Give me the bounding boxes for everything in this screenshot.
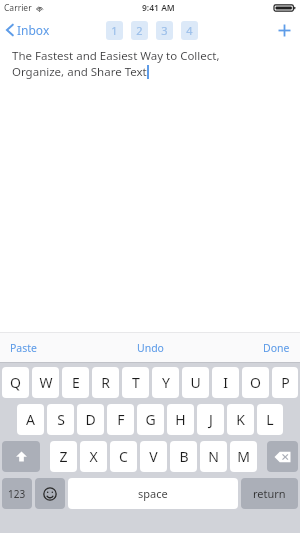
button[interactable]: J bbox=[197, 404, 224, 435]
button[interactable]: 123 bbox=[2, 478, 32, 509]
button[interactable]: 3 bbox=[156, 21, 173, 40]
staticText: M bbox=[237, 447, 250, 466]
button[interactable]: T bbox=[122, 367, 149, 398]
button[interactable]: 2 bbox=[131, 21, 148, 40]
staticText: J bbox=[209, 410, 213, 429]
staticText: Y bbox=[162, 373, 170, 392]
staticText: L bbox=[266, 410, 274, 429]
staticText: X bbox=[89, 447, 98, 466]
staticText: T bbox=[132, 373, 140, 392]
button[interactable]: V bbox=[140, 441, 167, 472]
button[interactable]: E bbox=[62, 367, 89, 398]
button[interactable]: Q bbox=[2, 367, 29, 398]
staticText: Paste bbox=[10, 341, 37, 355]
button[interactable]: Shift bbox=[2, 441, 40, 472]
staticText: Q bbox=[10, 373, 21, 392]
button[interactable]: B bbox=[170, 441, 197, 472]
button[interactable]: W bbox=[32, 367, 59, 398]
staticText: F bbox=[117, 410, 125, 429]
staticText: D bbox=[85, 410, 96, 429]
button[interactable]: 1 bbox=[106, 21, 123, 40]
staticText: V bbox=[149, 447, 158, 466]
staticText: R bbox=[101, 373, 110, 392]
staticText: Undo bbox=[137, 341, 164, 355]
staticText: E bbox=[72, 373, 80, 392]
staticText: W bbox=[39, 373, 53, 392]
staticText: 1 bbox=[111, 23, 118, 38]
button[interactable]: Inbox bbox=[0, 18, 58, 42]
button[interactable]: L bbox=[257, 404, 283, 435]
staticText: I bbox=[223, 373, 228, 392]
staticText: H bbox=[175, 410, 186, 429]
staticText: P bbox=[281, 373, 290, 392]
button[interactable]: X bbox=[80, 441, 107, 472]
button[interactable]: Add bbox=[269, 19, 300, 42]
button[interactable]: K bbox=[227, 404, 254, 435]
button[interactable]: C bbox=[110, 441, 137, 472]
staticText: A bbox=[26, 410, 35, 429]
staticText: S bbox=[57, 410, 65, 429]
button[interactable]: H bbox=[167, 404, 194, 435]
button[interactable]: space bbox=[68, 478, 238, 509]
button[interactable]: P bbox=[272, 367, 298, 398]
staticText: The Fastest and Easiest Way to Collect, bbox=[12, 48, 220, 64]
staticText: 9:41 AM bbox=[142, 2, 175, 14]
staticText: Done bbox=[263, 341, 290, 355]
button[interactable]: G bbox=[137, 404, 164, 435]
staticText: 2 bbox=[136, 23, 143, 38]
button[interactable]: Emoji bbox=[35, 478, 65, 509]
staticText: Carrier bbox=[4, 2, 32, 14]
staticText: space bbox=[138, 486, 168, 501]
button[interactable]: R bbox=[92, 367, 119, 398]
button[interactable]: F bbox=[107, 404, 134, 435]
button[interactable]: Y bbox=[152, 367, 179, 398]
button[interactable]: M bbox=[230, 441, 257, 472]
staticText: U bbox=[190, 373, 201, 392]
button[interactable]: Done bbox=[253, 336, 300, 360]
staticText: K bbox=[236, 410, 245, 429]
staticText: B bbox=[179, 447, 189, 466]
button[interactable]: S bbox=[47, 404, 74, 435]
staticText: 3 bbox=[161, 23, 168, 38]
staticText: N bbox=[208, 447, 219, 466]
button[interactable]: 4 bbox=[181, 21, 198, 40]
staticText: 123 bbox=[8, 487, 26, 501]
button[interactable]: U bbox=[182, 367, 209, 398]
staticText: return bbox=[253, 486, 286, 501]
staticText: Organize, and Share Text bbox=[12, 64, 147, 80]
button[interactable]: I bbox=[212, 367, 239, 398]
staticText: 4 bbox=[186, 23, 193, 38]
button[interactable]: Undo bbox=[127, 336, 174, 360]
staticText: O bbox=[250, 373, 261, 392]
staticText: Z bbox=[59, 447, 68, 466]
button[interactable]: N bbox=[200, 441, 227, 472]
button[interactable]: Paste bbox=[0, 336, 47, 360]
button[interactable]: D bbox=[77, 404, 104, 435]
button[interactable]: A bbox=[17, 404, 44, 435]
button[interactable]: O bbox=[242, 367, 269, 398]
button[interactable]: Delete bbox=[267, 441, 298, 472]
button[interactable]: Z bbox=[50, 441, 77, 472]
staticText: C bbox=[119, 447, 128, 466]
button[interactable]: return bbox=[241, 478, 298, 509]
staticText: G bbox=[145, 410, 156, 429]
staticText: Inbox bbox=[17, 22, 50, 38]
